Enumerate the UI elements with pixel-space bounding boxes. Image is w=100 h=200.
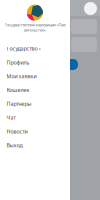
staticText: Государство [6,45,37,52]
staticText: Профиль [6,59,29,66]
button[interactable]: Профиль [0,55,70,69]
staticText: вительство» [24,27,46,33]
staticText: Мои заявки [6,73,36,80]
staticText: Партнеры [6,100,31,107]
staticText: Государственная корпорация «Пра [4,22,65,27]
button[interactable]: Мои заявки [0,69,70,83]
button[interactable]: Государство [0,42,70,55]
button[interactable]: Кошелек [0,83,70,97]
button[interactable]: Чат [0,111,70,124]
staticText: › [39,45,41,52]
button[interactable]: Новости [0,124,70,138]
button[interactable]: Партнеры [0,97,70,111]
button[interactable]: Выход [0,138,70,152]
staticText: Кошелек [6,86,29,93]
staticText: Выход [6,142,22,149]
staticText: Чат [6,114,15,121]
staticText: Новости [6,128,27,135]
